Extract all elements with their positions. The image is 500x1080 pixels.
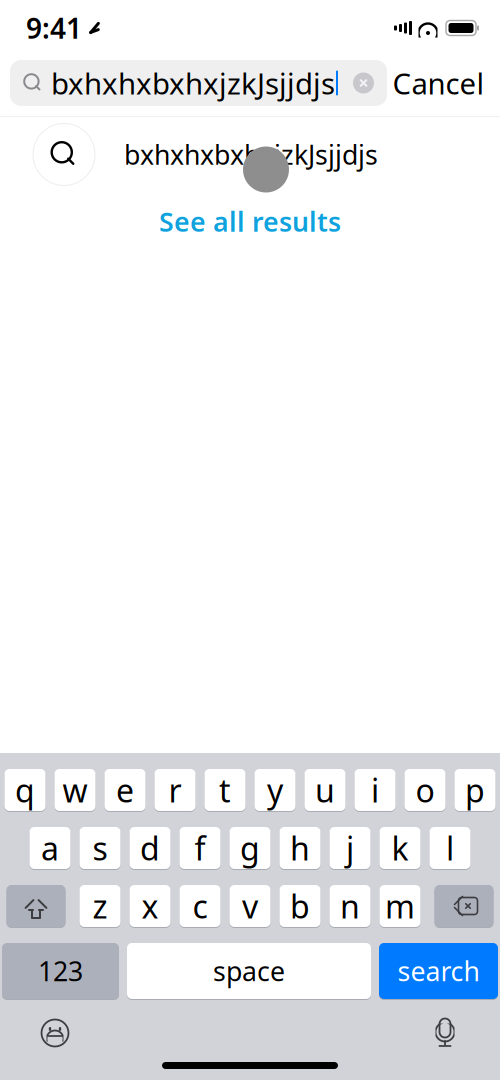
staticText: bxhxhxbxhxjzkJsjjdjs [51,63,335,102]
staticText: r [168,769,181,811]
button[interactable]: Dictate [430,1017,460,1049]
button[interactable]: l [429,826,470,870]
button[interactable]: w [54,768,95,812]
button[interactable]: See all results [0,196,500,246]
staticText: n [340,885,360,927]
staticText: f [194,827,205,869]
staticText: z [92,885,107,927]
button[interactable]: f [179,826,220,870]
button[interactable]: Cancel [387,60,490,106]
button[interactable]: Emoji [40,1018,70,1048]
staticText: s [92,827,107,869]
button[interactable]: bxhxhxbxhxjzkJsjjdjs [0,116,500,192]
staticText: q [15,769,35,811]
staticText: See all results [159,204,341,239]
button[interactable]: k [379,826,420,870]
staticText: p [465,769,485,811]
button[interactable]: Shift [6,884,65,928]
button[interactable]: p [454,768,495,812]
staticText: w [62,769,87,811]
staticText: l [446,827,454,869]
staticText: d [140,827,160,869]
button[interactable]: u [304,768,345,812]
button[interactable]: o [404,768,445,812]
button[interactable]: h [279,826,320,870]
button[interactable]: bxhxhxbxhxjzkJsjjdjs [10,60,387,106]
button[interactable]: q [4,768,45,812]
button[interactable]: 123 [2,942,119,1000]
staticText: search [397,953,479,989]
staticText: bxhxhxbxhxjzkJsjjdjs [124,137,378,172]
button[interactable]: a [29,826,70,870]
button[interactable]: x [129,884,170,928]
button[interactable]: Delete [434,884,493,928]
staticText: m [385,885,415,927]
button[interactable]: s [79,826,120,870]
staticText: 9:41 [26,9,82,47]
staticText: x [141,885,158,927]
staticText: Cancel [392,63,484,102]
staticText: t [219,769,231,811]
button[interactable]: y [254,768,295,812]
staticText: h [290,827,310,869]
staticText: a [41,827,59,869]
staticText: space [213,953,285,989]
button[interactable]: n [329,884,370,928]
staticText: u [315,769,335,811]
button[interactable]: c [179,884,220,928]
staticText: y [267,769,283,811]
button[interactable]: e [104,768,145,812]
staticText: 123 [38,953,83,989]
staticText: v [242,885,258,927]
button[interactable]: d [129,826,170,870]
staticText: g [240,827,260,869]
staticText: b [290,885,310,927]
button[interactable]: r [154,768,195,812]
staticText: j [346,827,354,869]
button[interactable]: b [279,884,320,928]
staticText: i [371,769,379,811]
staticText: k [391,827,408,869]
button[interactable]: i [354,768,395,812]
button[interactable]: j [329,826,370,870]
button[interactable]: t [204,768,245,812]
button[interactable]: m [379,884,420,928]
button[interactable]: v [229,884,270,928]
button[interactable]: z [79,884,120,928]
button[interactable]: g [229,826,270,870]
staticText: c [192,885,207,927]
staticText: o [415,769,434,811]
button[interactable]: search [379,942,498,1000]
staticText: e [116,769,134,811]
button[interactable]: space [127,942,371,1000]
